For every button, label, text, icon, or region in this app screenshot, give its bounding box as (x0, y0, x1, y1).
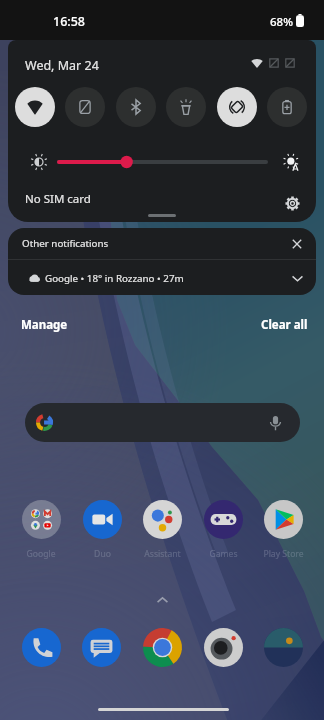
button[interactable]: App (143, 628, 182, 667)
staticText: Assistant (144, 548, 181, 560)
button[interactable]: Duo (72, 500, 132, 560)
button[interactable]: Expand (286, 267, 308, 289)
button[interactable]: Settings (280, 191, 304, 215)
button[interactable]: Quick setting (217, 87, 257, 127)
button[interactable]: App (22, 628, 61, 667)
button[interactable]: Google (11, 500, 71, 560)
button[interactable]: All apps (152, 590, 172, 610)
staticText: Google • 18° in Rozzano • 27m (45, 272, 184, 285)
staticText: Other notifications (22, 237, 109, 250)
staticText: No SIM card (25, 191, 91, 207)
button[interactable]: Quick setting (15, 87, 55, 127)
button[interactable]: App (204, 628, 243, 667)
staticText: Duo (94, 548, 111, 560)
staticText: Google (26, 548, 56, 560)
staticText: Manage (21, 317, 68, 333)
button[interactable]: Quick setting (166, 87, 206, 127)
button[interactable]: Assistant (132, 500, 192, 560)
button[interactable]: Quick setting (267, 87, 307, 127)
button[interactable]: App (264, 628, 303, 667)
staticText: Clear all (261, 317, 308, 333)
other: Voice search (266, 414, 284, 432)
staticText: 68% (270, 14, 293, 30)
staticText: 16:58 (53, 13, 86, 30)
button[interactable]: Play Store (253, 500, 313, 560)
button[interactable]: Voice search (25, 403, 300, 442)
staticText: Wed, Mar 24 (25, 57, 99, 74)
button[interactable]: Quick setting (116, 87, 156, 127)
button[interactable] (8, 260, 316, 295)
staticText: Play Store (263, 548, 304, 560)
staticText: Games (209, 548, 238, 560)
button[interactable]: Clear all (261, 317, 308, 333)
button[interactable]: Manage (21, 317, 68, 333)
button[interactable]: Quick setting (65, 87, 105, 127)
button[interactable]: App (82, 628, 121, 667)
button[interactable]: Dismiss notifications (286, 233, 308, 255)
button[interactable]: Games (193, 500, 253, 560)
